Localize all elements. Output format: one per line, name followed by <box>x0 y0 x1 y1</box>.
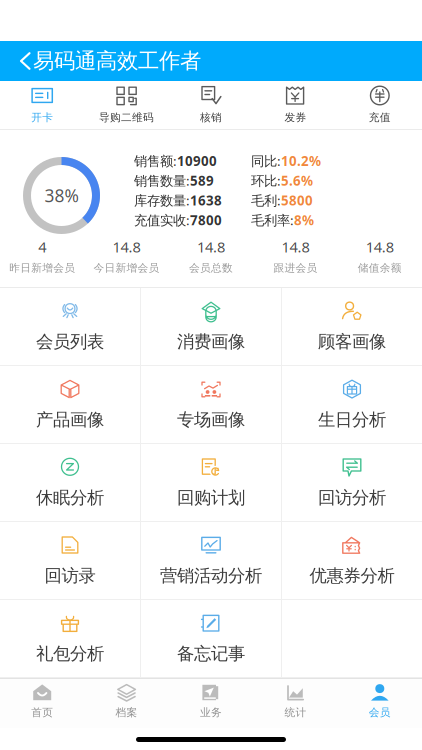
staticText: 档案 <box>116 706 138 719</box>
button[interactable]: 发券 <box>253 81 338 130</box>
staticText: 业务 <box>200 706 222 719</box>
staticText: 顾客画像 <box>318 331 386 352</box>
staticText: 会员总数 <box>189 261 233 275</box>
button[interactable]: 易码通高效工作者 <box>0 42 201 80</box>
staticText: 同比: <box>251 152 281 170</box>
button[interactable]: 休眠分析 <box>0 444 140 522</box>
staticText: 14.8 <box>281 237 309 256</box>
staticText: 发券 <box>284 111 306 124</box>
button[interactable]: 档案 <box>84 678 169 728</box>
staticText: 产品画像 <box>36 409 104 430</box>
button[interactable]: 备忘记事 <box>141 600 281 678</box>
staticText: 4 <box>38 237 46 256</box>
staticText: 14.8 <box>197 237 225 256</box>
staticText: 环比: <box>251 172 281 189</box>
staticText: 休眠分析 <box>36 487 104 508</box>
staticText: 专场画像 <box>177 409 245 430</box>
staticText: 1638 <box>190 191 222 209</box>
button[interactable]: 回购计划 <box>141 444 281 522</box>
staticText: 销售数量: <box>134 172 190 189</box>
staticText: 毛利率: <box>251 211 294 229</box>
staticText: 5.6% <box>281 172 313 189</box>
button[interactable]: 回访录 <box>0 522 140 600</box>
staticText: 毛利: <box>251 191 281 209</box>
staticText: 导购二维码 <box>99 111 154 124</box>
staticText: 14.8 <box>113 237 141 256</box>
staticText: 核销 <box>200 111 222 124</box>
staticText: 回访分析 <box>318 487 386 508</box>
button[interactable]: 产品画像 <box>0 366 140 444</box>
button[interactable]: 优惠券分析 <box>282 522 422 600</box>
staticText: 礼包分析 <box>36 643 104 664</box>
staticText: 库存数量: <box>134 191 190 209</box>
staticText: 14.8 <box>366 237 394 256</box>
button[interactable]: 消费画像 <box>141 288 281 366</box>
staticText: 开卡 <box>31 111 53 124</box>
staticText: 充值实收: <box>134 211 190 229</box>
staticText: 38% <box>44 184 78 207</box>
button[interactable]: 充值 <box>338 81 422 130</box>
staticText: 备忘记事 <box>177 643 245 664</box>
button[interactable]: 会员列表 <box>0 288 140 366</box>
staticText: 营销活动分析 <box>160 565 262 586</box>
button[interactable]: 回访分析 <box>282 444 422 522</box>
staticText: 会员 <box>369 706 391 719</box>
button[interactable]: 生日分析 <box>282 366 422 444</box>
button[interactable]: 核销 <box>169 81 253 130</box>
button[interactable]: 导购二维码 <box>84 81 169 130</box>
staticText: 回访录 <box>44 565 95 586</box>
staticText: 跟进会员 <box>273 261 317 275</box>
staticText: 消费画像 <box>177 331 245 352</box>
staticText: 7800 <box>190 211 222 229</box>
staticText: 589 <box>190 172 214 189</box>
staticText: 首页 <box>31 706 53 719</box>
button[interactable]: 顾客画像 <box>282 288 422 366</box>
staticText: 优惠券分析 <box>309 565 394 586</box>
staticText: 5800 <box>281 191 313 209</box>
staticText: 易码通高效工作者 <box>33 48 201 74</box>
staticText: 昨日新增会员 <box>9 261 75 275</box>
staticText: 充值 <box>369 111 391 124</box>
staticText: 会员列表 <box>36 331 104 352</box>
staticText: 10.2% <box>281 152 321 170</box>
button[interactable]: 首页 <box>0 678 84 728</box>
button[interactable]: 会员 <box>338 678 422 728</box>
staticText: 储值余额 <box>358 261 402 275</box>
button[interactable]: 营销活动分析 <box>141 522 281 600</box>
button[interactable]: 业务 <box>169 678 253 728</box>
button[interactable]: 专场画像 <box>141 366 281 444</box>
button[interactable]: 统计 <box>253 678 338 728</box>
staticText: 生日分析 <box>318 409 386 430</box>
staticText: 今日新增会员 <box>94 261 160 275</box>
button[interactable]: 开卡 <box>0 81 84 130</box>
button[interactable]: 礼包分析 <box>0 600 140 678</box>
staticText: 回购计划 <box>177 487 245 508</box>
staticText: 8% <box>294 211 314 229</box>
staticText: 10900 <box>177 152 217 170</box>
staticText: 销售额: <box>134 152 177 170</box>
staticText: 统计 <box>284 706 306 719</box>
